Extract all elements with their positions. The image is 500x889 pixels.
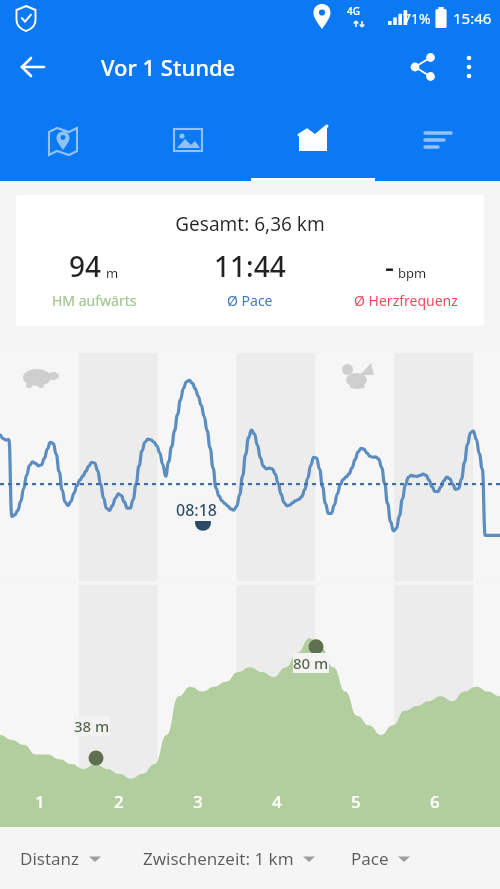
staticText: 15:46 bbox=[453, 8, 492, 28]
staticText: 80 m bbox=[293, 653, 329, 673]
staticText: - bbox=[385, 247, 394, 285]
staticText: 3 bbox=[193, 790, 203, 813]
button[interactable]: Back bbox=[10, 44, 56, 90]
staticText: Zwischenzeit: 1 km bbox=[143, 847, 294, 870]
staticText: Ø Pace bbox=[227, 291, 273, 310]
staticText: 11:44 bbox=[214, 247, 286, 285]
staticText: Gesamt: 6,36 km bbox=[16, 211, 484, 237]
staticText: 2 bbox=[114, 790, 124, 813]
button[interactable]: Distanz bbox=[14, 839, 107, 878]
staticText: 08:18 bbox=[176, 499, 217, 521]
staticText: m bbox=[106, 264, 119, 282]
staticText: 5 bbox=[351, 790, 361, 813]
button[interactable]: Zwischenzeit: 1 km bbox=[137, 839, 321, 878]
staticText: Vor 1 Stunde bbox=[101, 52, 236, 82]
staticText: 6 bbox=[430, 790, 440, 813]
staticText: 71% bbox=[403, 9, 431, 28]
staticText: 4 bbox=[272, 790, 282, 813]
button[interactable]: More options bbox=[446, 44, 492, 90]
staticText: Distanz bbox=[20, 847, 80, 870]
staticText: 38 m bbox=[74, 716, 110, 736]
button[interactable]: Gesamt: 6,36 km bbox=[16, 195, 484, 326]
button[interactable]: Pace bbox=[345, 839, 416, 878]
staticText: Ø Herzfrequenz bbox=[354, 291, 458, 310]
button[interactable]: Map bbox=[0, 98, 125, 181]
staticText: 94 bbox=[69, 247, 102, 285]
staticText: 1 bbox=[35, 790, 45, 813]
button[interactable]: Photos bbox=[125, 98, 250, 181]
staticText: Pace bbox=[351, 847, 389, 870]
button[interactable]: Splits bbox=[375, 98, 500, 181]
button[interactable]: Charts bbox=[250, 98, 375, 181]
staticText: HM aufwärts bbox=[52, 291, 137, 310]
staticText: 4G bbox=[347, 4, 360, 18]
button[interactable]: Share bbox=[400, 44, 446, 90]
staticText: bpm bbox=[398, 264, 427, 282]
